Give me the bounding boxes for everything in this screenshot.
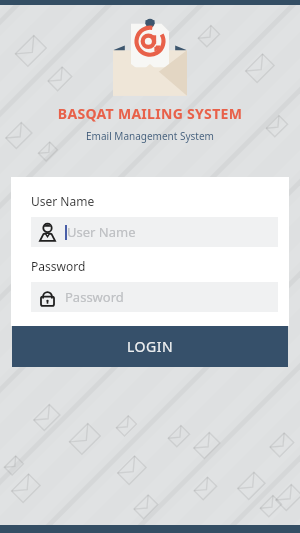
button[interactable]: User Name field [31,217,278,247]
staticText: Password [65,288,124,306]
staticText: BASQAT MAILING SYSTEM [0,104,300,123]
staticText: Password [31,258,86,274]
staticText: Email Management System [0,129,300,143]
staticText: LOGIN [127,337,174,356]
staticText: User Name [31,193,95,209]
button[interactable]: Password field [31,282,278,312]
button[interactable]: LOGIN [12,326,288,367]
staticText: User Name [67,223,136,241]
